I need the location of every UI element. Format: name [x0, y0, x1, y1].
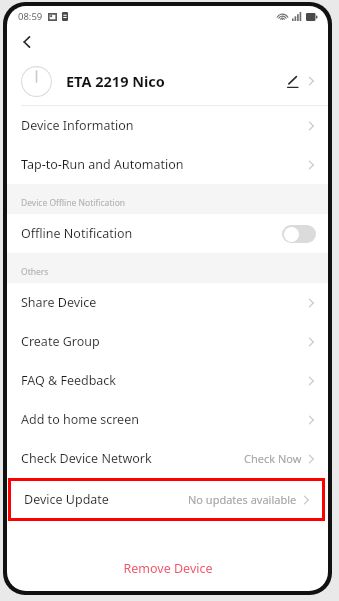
button[interactable]: Back [7, 27, 47, 57]
staticText: No updates available [188, 492, 297, 507]
staticText: Device Information [21, 117, 134, 134]
button[interactable]: ETA 2219 Nico [7, 57, 328, 105]
button[interactable]: Add to home screen [7, 400, 328, 439]
staticText: Offline Notification [21, 225, 133, 242]
staticText: Tap-to-Run and Automation [21, 156, 184, 173]
staticText: FAQ & Feedback [21, 372, 117, 389]
button[interactable]: Device Update [11, 481, 322, 518]
staticText: Device Offline Notification [21, 197, 126, 209]
staticText: Check Now [244, 451, 302, 466]
button[interactable]: FAQ & Feedback [7, 361, 328, 400]
other: Edit device name [281, 70, 303, 92]
button[interactable]: Create Group [7, 322, 328, 361]
staticText: Share Device [21, 294, 97, 311]
staticText: 08:59 [18, 10, 43, 23]
button[interactable]: Offline Notification toggle [282, 225, 316, 243]
button[interactable]: Tap-to-Run and Automation [7, 145, 328, 184]
staticText: Remove Device [123, 560, 213, 577]
staticText: Others [21, 266, 49, 278]
staticText: Add to home screen [21, 411, 139, 428]
button[interactable]: Remove Device [7, 551, 328, 585]
staticText: ETA 2219 Nico [66, 71, 165, 91]
button[interactable]: Check Device Network [7, 439, 328, 478]
button[interactable]: Share Device [7, 283, 328, 322]
staticText: Create Group [21, 333, 100, 350]
button[interactable]: Device Information [7, 106, 328, 145]
staticText: Device Update [24, 491, 109, 508]
staticText: Check Device Network [21, 450, 152, 467]
button[interactable]: Offline Notification [7, 214, 328, 253]
